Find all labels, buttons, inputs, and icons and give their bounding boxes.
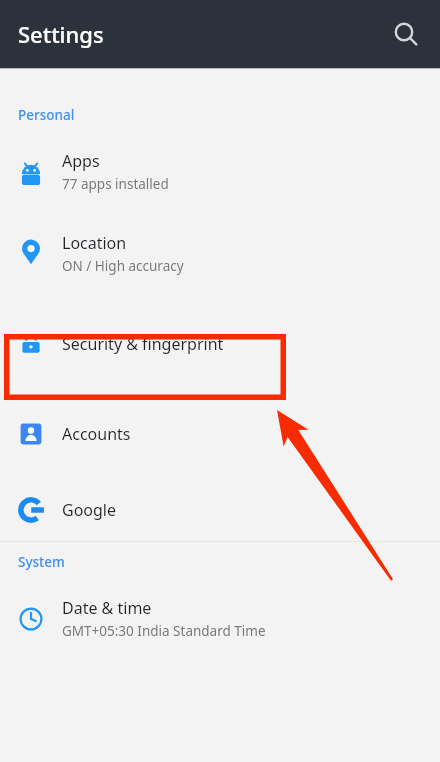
staticText: Apps (62, 150, 100, 172)
staticText: 77 apps installed (62, 175, 169, 193)
button[interactable]: Location (0, 208, 440, 298)
button[interactable]: Apps (0, 135, 440, 208)
staticText: Personal (18, 106, 75, 124)
button[interactable]: Date & time (0, 582, 440, 655)
staticText: Settings (18, 19, 104, 49)
button[interactable]: Search (382, 11, 428, 57)
button[interactable]: Security & fingerprint (0, 298, 440, 389)
staticText: GMT+05:30 India Standard Time (62, 622, 266, 640)
staticText: Google (62, 499, 117, 521)
staticText: Security & fingerprint (62, 333, 224, 355)
staticText: Location (62, 232, 127, 254)
staticText: System (18, 553, 65, 571)
staticText: Accounts (62, 423, 131, 445)
staticText: ON / High accuracy (62, 257, 184, 275)
button[interactable]: Google (0, 479, 440, 541)
button[interactable]: Accounts (0, 389, 440, 479)
staticText: Date & time (62, 597, 152, 619)
